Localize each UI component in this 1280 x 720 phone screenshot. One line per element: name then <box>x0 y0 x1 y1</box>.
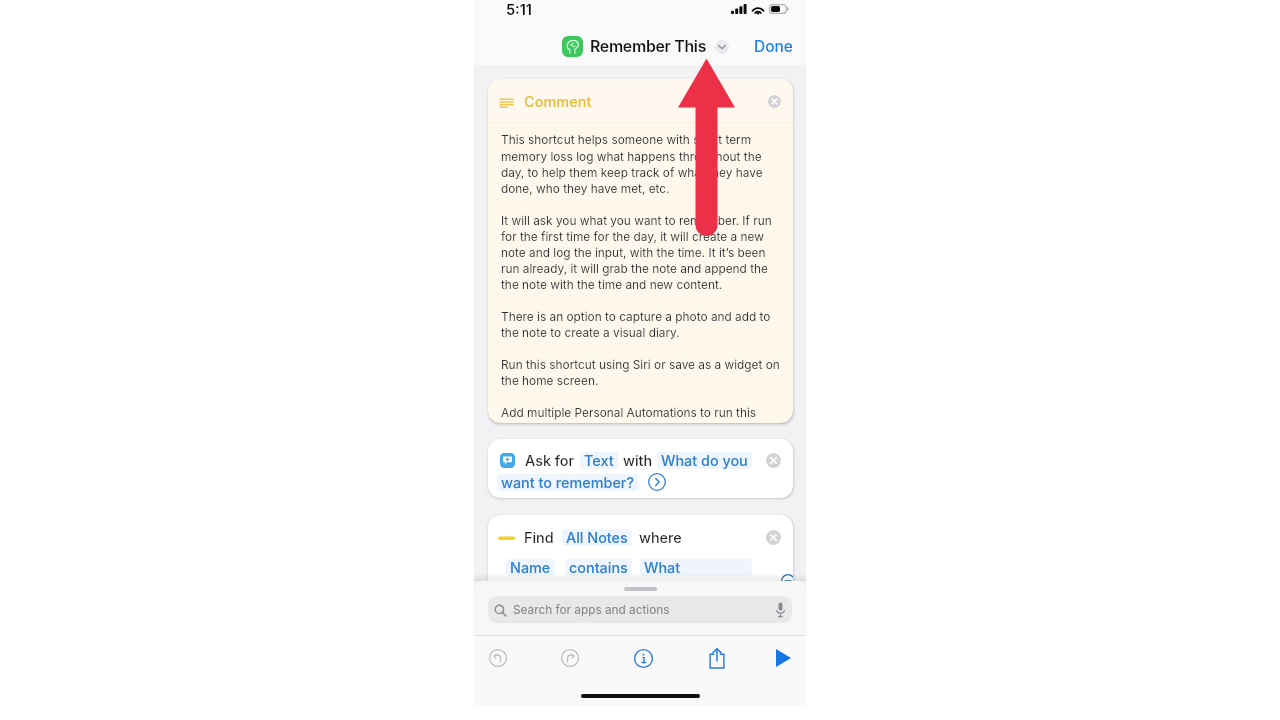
staticText: with <box>623 452 653 469</box>
button[interactable]: Remove action <box>768 95 781 108</box>
staticText: Find <box>524 529 554 546</box>
staticText: where <box>639 529 682 546</box>
staticText: What do you <box>661 452 748 469</box>
button[interactable]: Details <box>622 637 664 679</box>
button[interactable]: Show more options <box>648 473 666 491</box>
staticText: contains <box>569 559 628 576</box>
button[interactable]: Search for apps and actions <box>488 596 792 623</box>
button[interactable]: Share <box>696 637 738 679</box>
staticText: What <box>644 559 681 576</box>
staticText: Remember This <box>590 37 707 56</box>
button[interactable]: Remove filter <box>781 574 793 588</box>
staticText: All Notes <box>566 529 628 546</box>
staticText: Comment <box>524 93 592 111</box>
staticText: Ask for <box>525 452 575 469</box>
button[interactable]: Ask for <box>488 439 793 498</box>
button[interactable]: Done <box>746 32 801 61</box>
staticText: Text <box>584 452 614 469</box>
button[interactable]: Undo <box>477 637 519 679</box>
staticText: Name <box>510 559 551 576</box>
button[interactable]: Remove action <box>766 453 781 468</box>
staticText: Search for apps and actions <box>513 603 670 617</box>
button[interactable]: Comment <box>488 79 793 423</box>
staticText: want to remember? <box>501 474 635 491</box>
button[interactable]: Redo <box>549 637 591 679</box>
button[interactable]: Expand shortcut details <box>715 40 729 54</box>
staticText: Done <box>754 37 793 56</box>
button[interactable]: Remove action <box>766 530 781 545</box>
staticText: This shortcut helps someone with short t… <box>501 133 782 420</box>
button[interactable]: Run shortcut <box>762 637 804 679</box>
staticText: 5:11 <box>506 1 533 19</box>
button[interactable]: Find <box>488 515 793 610</box>
